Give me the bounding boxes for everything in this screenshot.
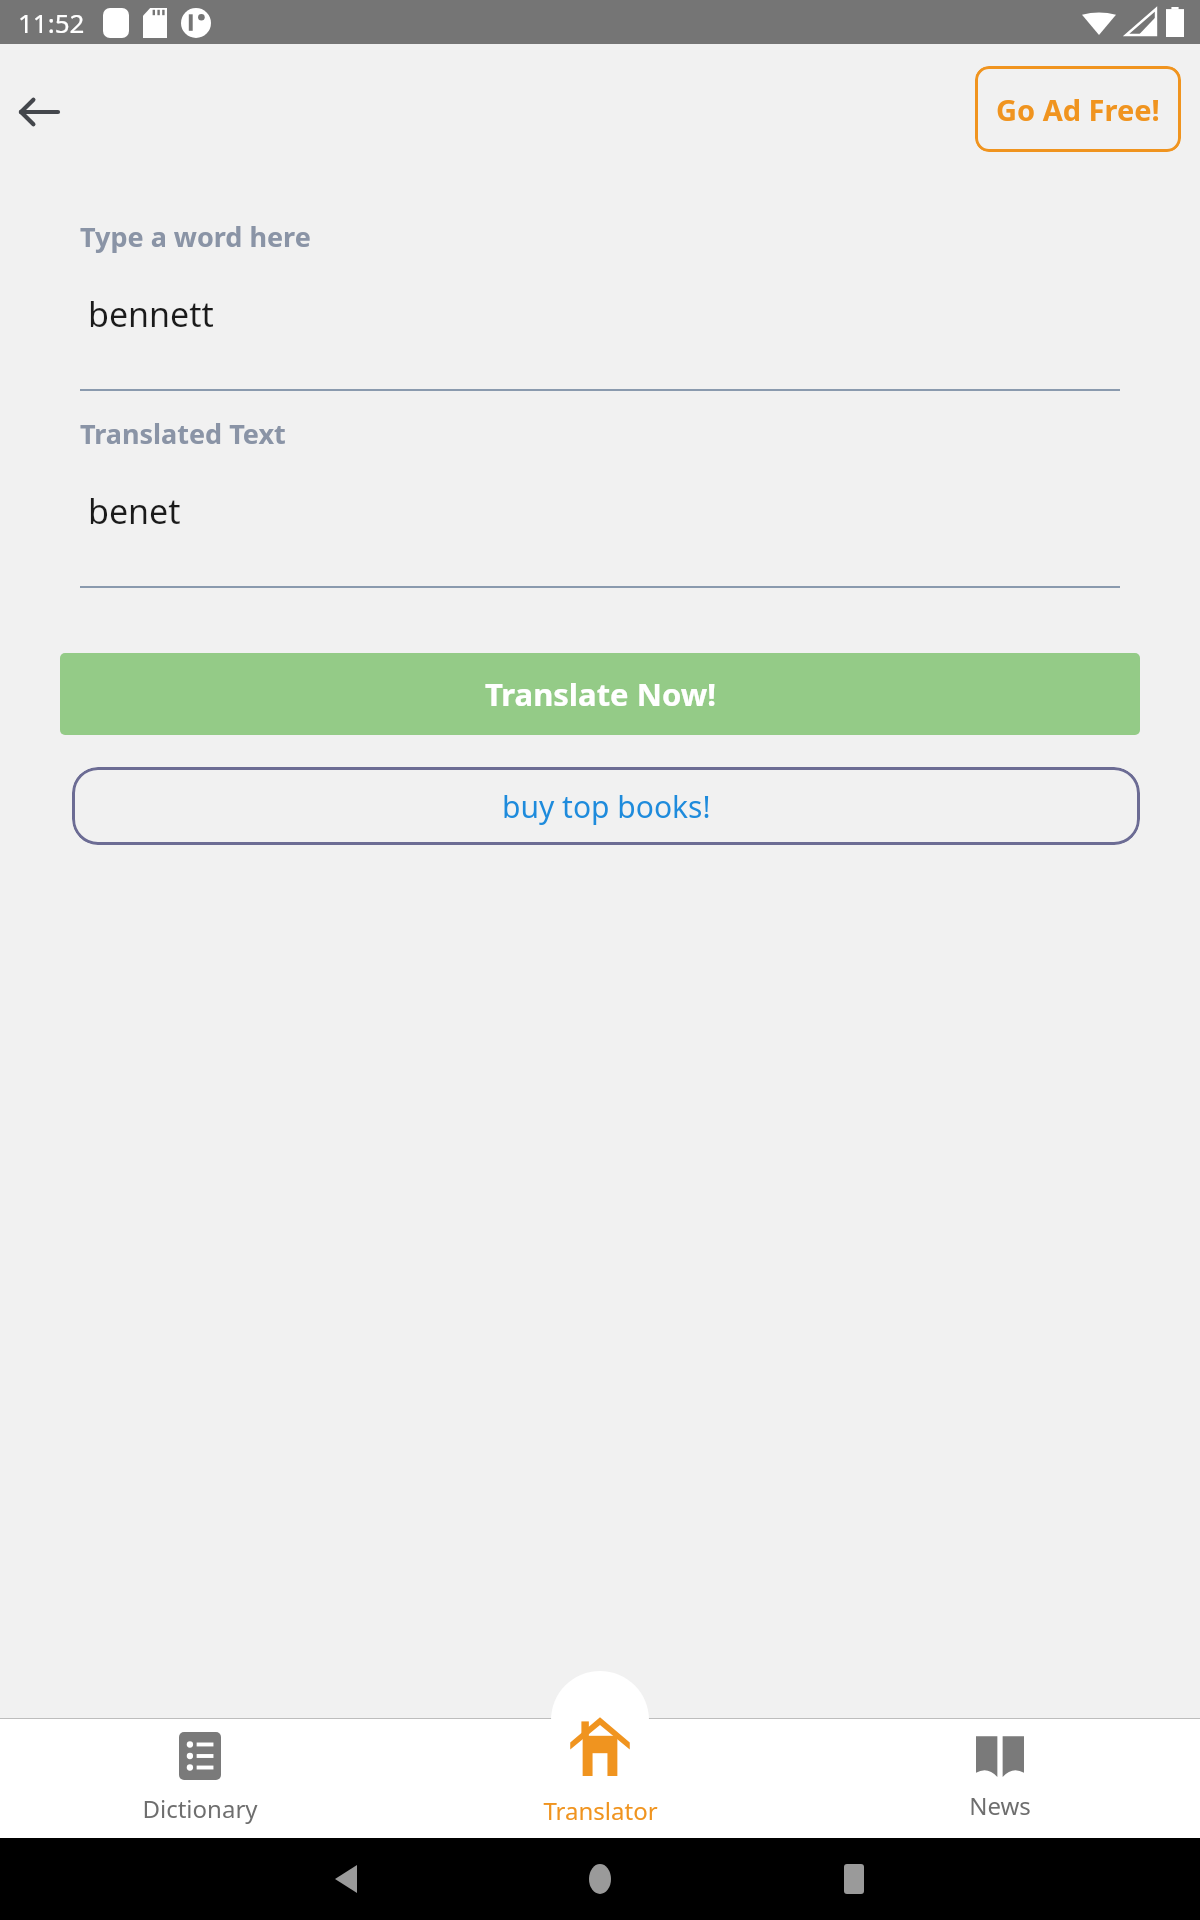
- staticText: News: [969, 1789, 1031, 1822]
- button[interactable]: Translated Text: [0, 415, 1200, 588]
- button[interactable]: Home: [572, 1851, 628, 1907]
- button[interactable]: News: [800, 1718, 1200, 1838]
- button[interactable]: Type a word here: [0, 218, 1200, 391]
- staticText: Type a word here: [80, 218, 311, 255]
- button[interactable]: Go Ad Free!: [975, 66, 1181, 152]
- staticText: Dictionary: [142, 1792, 258, 1825]
- staticText: Go Ad Free!: [996, 90, 1160, 129]
- button[interactable]: Back: [318, 1851, 374, 1907]
- button[interactable]: Recent apps: [826, 1851, 882, 1907]
- button[interactable]: buy top books!: [72, 767, 1140, 845]
- button[interactable]: Translate Now!: [60, 653, 1140, 735]
- button[interactable]: Translator: [400, 1718, 800, 1838]
- staticText: benet: [88, 488, 181, 534]
- staticText: Translate Now!: [485, 673, 716, 715]
- button[interactable]: Back: [10, 83, 68, 141]
- staticText: bennett: [88, 291, 214, 337]
- staticText: buy top books!: [502, 786, 711, 827]
- button[interactable]: Dictionary: [0, 1718, 400, 1838]
- staticText: Translated Text: [80, 415, 286, 452]
- staticText: Translator: [543, 1794, 658, 1827]
- staticText: 11:52: [18, 5, 85, 40]
